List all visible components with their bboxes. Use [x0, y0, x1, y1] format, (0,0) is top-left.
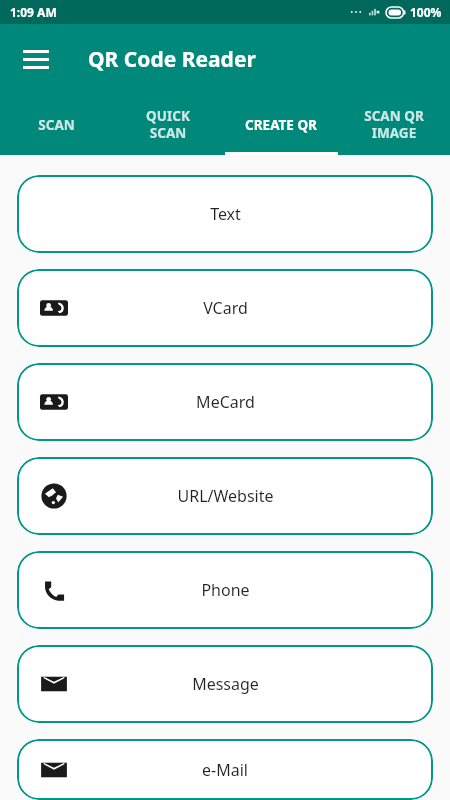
button[interactable]: SCAN: [0, 94, 112, 155]
staticText: 1:09 AM: [10, 4, 57, 20]
staticText: 100%: [410, 4, 442, 20]
staticText: e-Mail: [202, 759, 248, 781]
button[interactable]: e-Mail: [17, 739, 433, 800]
button[interactable]: MeCard: [17, 363, 433, 441]
button[interactable]: QUICK SCAN: [112, 94, 224, 155]
staticText: QUICK SCAN: [146, 107, 190, 142]
button[interactable]: URL/Website: [17, 457, 433, 535]
staticText: URL/Website: [177, 485, 274, 507]
button[interactable]: Open navigation menu: [12, 35, 60, 83]
staticText: VCard: [203, 297, 248, 319]
staticText: QR Code Reader: [88, 45, 256, 74]
button[interactable]: CREATE QR: [224, 94, 337, 155]
button[interactable]: SCAN QR IMAGE: [337, 94, 450, 155]
button[interactable]: Message: [17, 645, 433, 723]
staticText: Phone: [201, 579, 250, 601]
staticText: SCAN QR IMAGE: [364, 107, 424, 142]
staticText: SCAN: [38, 116, 75, 134]
button[interactable]: Phone: [17, 551, 433, 629]
staticText: CREATE QR: [245, 116, 317, 134]
staticText: MeCard: [196, 391, 255, 413]
staticText: Text: [210, 203, 241, 225]
staticText: Message: [192, 673, 259, 695]
button[interactable]: VCard: [17, 269, 433, 347]
button[interactable]: Text: [17, 175, 433, 253]
